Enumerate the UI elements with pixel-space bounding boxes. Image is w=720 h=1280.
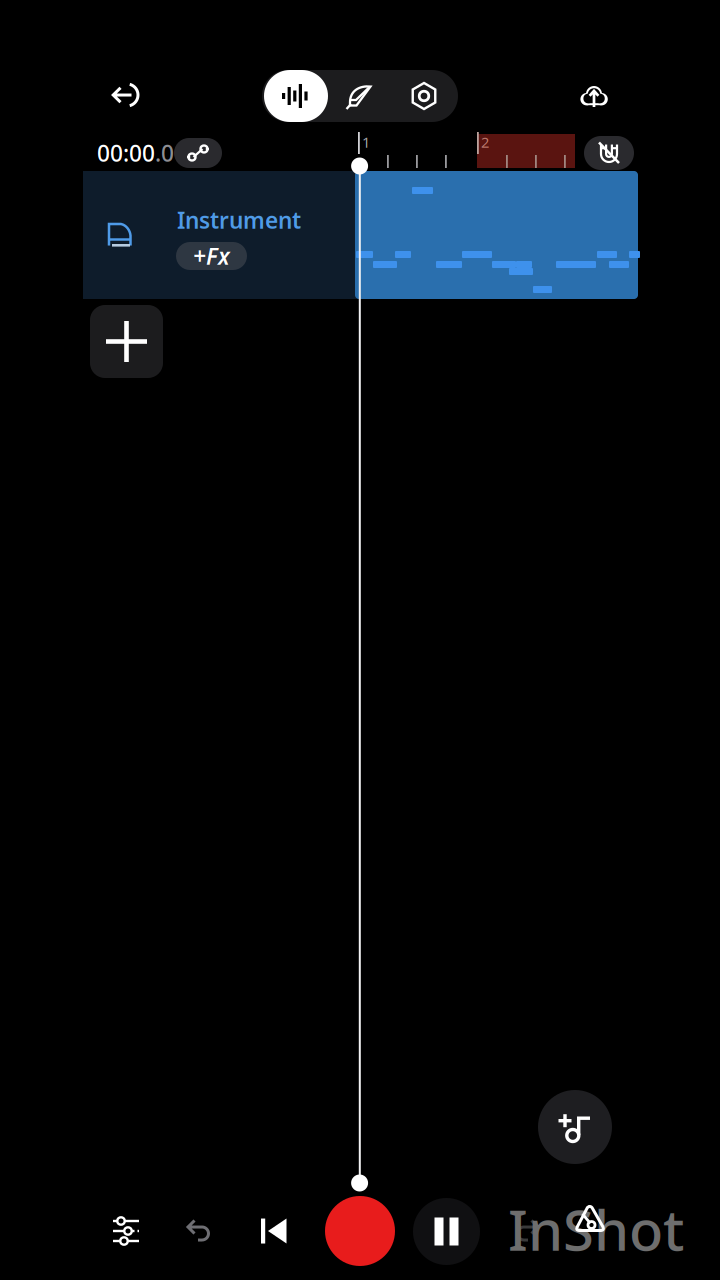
staticText: 00:00 <box>97 138 155 168</box>
button[interactable]: Automation <box>174 138 222 168</box>
button[interactable]: Tracks <box>264 70 328 122</box>
button[interactable]: Snap to grid off <box>584 136 634 170</box>
staticText: 2 <box>481 132 489 152</box>
staticText: 1 <box>362 132 370 152</box>
button[interactable]: Upload to cloud <box>562 66 626 126</box>
button[interactable]: MIDI region <box>355 171 638 299</box>
button[interactable]: Record <box>325 1196 395 1266</box>
staticText: .0 <box>155 138 174 168</box>
staticText: InShot <box>508 1192 684 1266</box>
button[interactable]: Redo <box>498 1203 554 1259</box>
button[interactable]: Undo <box>172 1203 228 1259</box>
button[interactable]: Settings <box>392 70 456 122</box>
button[interactable]: Mixer <box>98 1203 154 1259</box>
button[interactable]: Instrument track <box>83 171 360 299</box>
staticText: +Fx <box>193 241 230 271</box>
staticText: Instrument <box>177 205 301 235</box>
button[interactable]: Back <box>94 66 158 126</box>
button[interactable]: Compose <box>328 70 392 122</box>
button[interactable]: Add music <box>538 1090 612 1164</box>
button[interactable]: Pause <box>413 1198 480 1265</box>
button[interactable]: Go to start <box>246 1203 302 1259</box>
button[interactable]: +Fx <box>176 242 247 270</box>
button[interactable]: Add track <box>90 305 163 378</box>
